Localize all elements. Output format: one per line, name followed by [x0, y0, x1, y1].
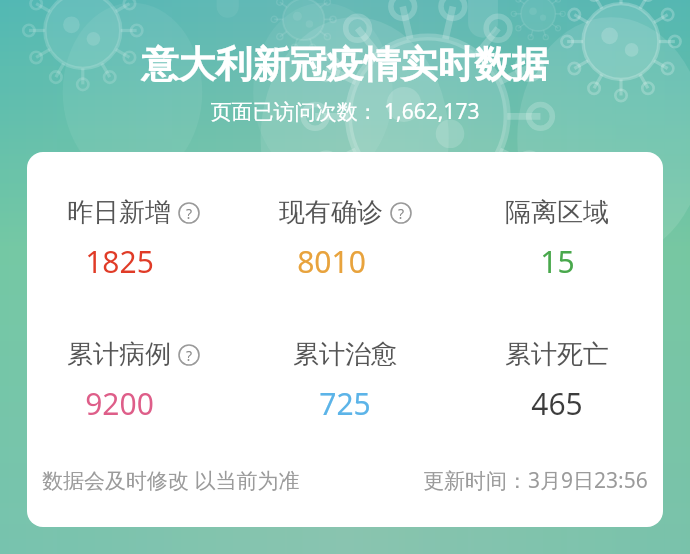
staticText: 数据会及时修改 以当前为准 — [42, 466, 300, 495]
staticText: 9200 — [85, 383, 154, 424]
button[interactable]: Info — [178, 344, 200, 366]
button[interactable]: Info — [390, 202, 412, 224]
button[interactable]: Info — [178, 202, 200, 224]
staticText: 8010 — [297, 241, 366, 282]
button[interactable]: 现有确诊 — [239, 196, 451, 282]
staticText: 1825 — [85, 241, 154, 282]
button[interactable]: 隔离区域 — [451, 196, 663, 282]
staticText: 725 — [319, 383, 371, 424]
staticText: 465 — [531, 383, 583, 424]
staticText: 意大利新冠疫情实时数据 — [0, 41, 690, 88]
staticText: 累计治愈 — [293, 338, 397, 371]
button[interactable]: 累计治愈 — [239, 338, 451, 424]
staticText: 累计死亡 — [505, 338, 609, 371]
staticText: 更新时间：3月9日23:56 — [423, 466, 648, 495]
staticText: 昨日新增 — [67, 196, 171, 229]
button[interactable]: 累计死亡 — [451, 338, 663, 424]
staticText: 隔离区域 — [505, 196, 609, 229]
staticText: 现有确诊 — [279, 196, 383, 229]
staticText: 15 — [540, 241, 575, 282]
staticText: ? — [398, 204, 405, 223]
button[interactable]: 累计病例 — [27, 338, 239, 424]
staticText: ? — [186, 204, 193, 223]
button[interactable]: 昨日新增 — [27, 196, 239, 282]
staticText: 页面已访问次数： 1,662,173 — [0, 97, 690, 126]
staticText: 累计病例 — [67, 338, 171, 371]
staticText: ? — [186, 346, 193, 365]
